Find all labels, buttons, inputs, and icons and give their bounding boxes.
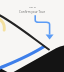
staticText: Confirm your Tour [19,10,45,14]
staticText: Tap to [29,5,36,8]
